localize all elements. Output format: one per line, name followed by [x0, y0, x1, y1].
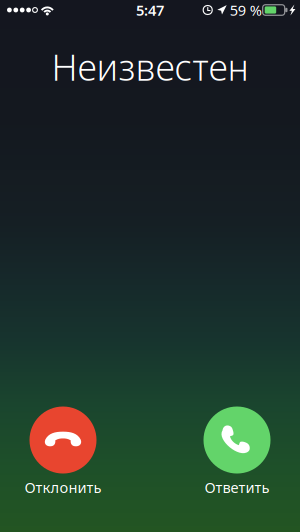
staticText: Ответить — [204, 477, 269, 497]
staticText: 5:47 — [136, 0, 164, 20]
button[interactable]: Ответить — [182, 406, 292, 497]
staticText: Отклонить — [24, 477, 101, 497]
staticText: Неизвестен — [51, 43, 248, 91]
staticText: 59 % — [230, 0, 262, 20]
button[interactable]: Отклонить — [8, 406, 118, 497]
